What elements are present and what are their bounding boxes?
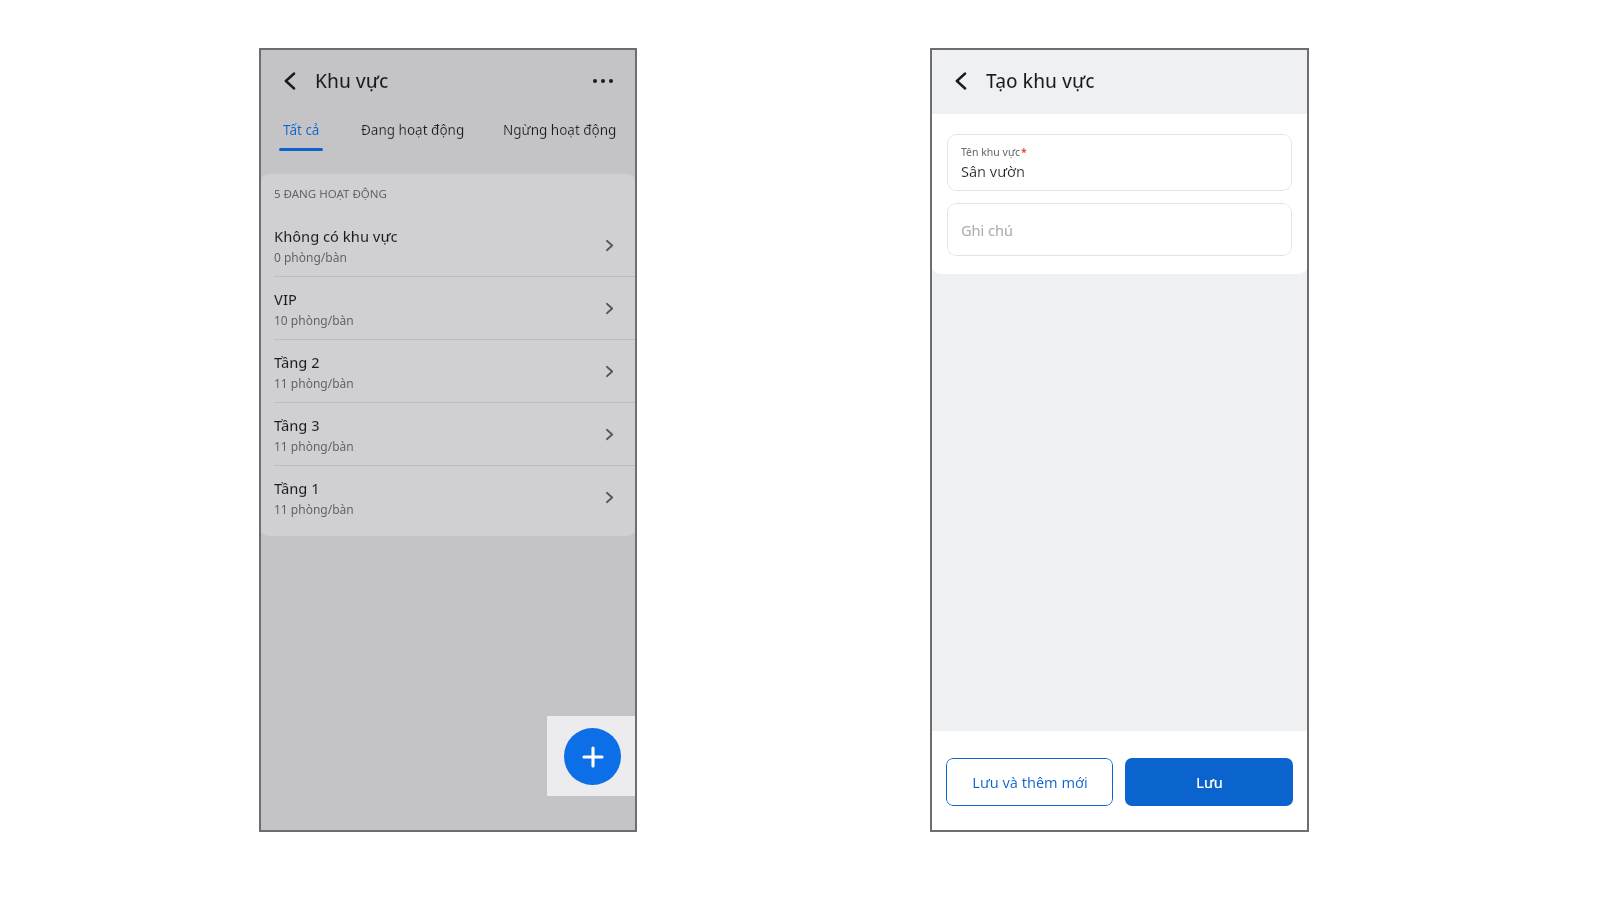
staticText: Tạo khu vực [986,68,1095,94]
staticText: Khu vực [315,68,389,94]
button[interactable]: Tất cả [259,114,343,160]
staticText: 10 phòng/bàn [274,312,354,328]
staticText: Tất cả [283,121,320,139]
staticText: Sân vườn [961,161,1025,181]
staticText: 5 ĐANG HOẠT ĐỘNG [274,186,387,202]
staticText: Lưu và thêm mới [972,772,1088,792]
staticText: Tầng 3 [274,415,320,435]
staticText: Tầng 1 [274,478,320,498]
button[interactable]: VIP [259,276,637,339]
staticText: 11 phòng/bàn [274,375,354,391]
button[interactable]: Tầng 2 [259,339,637,402]
staticText: Không có khu vực [274,226,398,246]
button[interactable]: Add area [564,728,621,785]
button[interactable]: Lưu [1125,758,1293,806]
button[interactable]: Đang hoạt động [343,114,483,160]
button[interactable]: Back [273,64,307,98]
button[interactable]: More options [585,63,621,99]
staticText: Lưu [1196,772,1223,792]
button[interactable]: Ngừng hoạt động [483,114,637,160]
staticText: Đang hoạt động [361,121,465,139]
button[interactable]: Lưu và thêm mới [946,758,1113,806]
button[interactable]: Back [944,64,978,98]
staticText: VIP [274,289,297,309]
button[interactable]: Tầng 1 [259,465,637,528]
button[interactable]: Tên khu vực [947,134,1292,191]
button[interactable]: Tầng 3 [259,402,637,465]
staticText: Ngừng hoạt động [503,121,617,139]
staticText: 0 phòng/bàn [274,249,347,265]
button[interactable]: Ghi chú [947,203,1292,256]
staticText: 11 phòng/bàn [274,438,354,454]
staticText: 11 phòng/bàn [274,501,354,517]
staticText: Tầng 2 [274,352,320,372]
staticText: * [1021,145,1027,159]
button[interactable]: Không có khu vực [259,214,637,276]
staticText: Tên khu vực [961,145,1021,159]
staticText: Ghi chú [961,220,1013,240]
